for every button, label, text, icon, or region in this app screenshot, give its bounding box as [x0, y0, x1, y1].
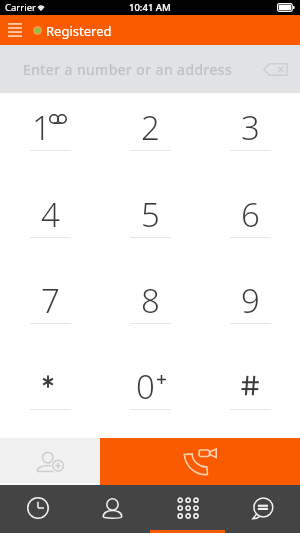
button[interactable]: 3 [200, 93, 300, 180]
staticText: 1 [32, 105, 51, 150]
button[interactable] [0, 352, 100, 438]
staticText: 9 [241, 278, 260, 323]
button[interactable]: Contacts [75, 485, 150, 533]
button[interactable]: 4 [0, 180, 100, 266]
button[interactable]: 1 [0, 93, 100, 180]
button[interactable]: 6 [200, 180, 300, 266]
button[interactable]: Dialpad [150, 485, 225, 533]
button[interactable] [200, 352, 300, 438]
button[interactable]: Recents [0, 485, 75, 533]
staticText: 3 [241, 105, 260, 150]
button[interactable]: 7 [0, 266, 100, 352]
staticText: 7 [41, 278, 60, 323]
button[interactable]: Add contact [0, 438, 100, 485]
staticText: 8 [141, 278, 160, 323]
button[interactable]: Messages [225, 485, 300, 533]
button[interactable]: 2 [100, 93, 200, 180]
button[interactable]: 9 [200, 266, 300, 352]
staticText: 10:41 AM [129, 1, 171, 14]
button[interactable]: 0 [100, 352, 200, 438]
staticText: 0 [136, 364, 155, 409]
staticText: 2 [141, 105, 160, 150]
staticText: 4 [41, 192, 60, 237]
button[interactable]: 5 [100, 180, 200, 266]
button[interactable]: Menu [0, 15, 30, 45]
button[interactable]: Backspace [255, 45, 300, 93]
staticText: 5 [141, 192, 160, 237]
staticText: Enter a number or an address [23, 60, 233, 79]
button[interactable]: Call [100, 438, 300, 485]
button[interactable]: 8 [100, 266, 200, 352]
staticText: 6 [241, 192, 260, 237]
staticText: Carrier [5, 1, 36, 14]
staticText: Registered [46, 22, 112, 40]
